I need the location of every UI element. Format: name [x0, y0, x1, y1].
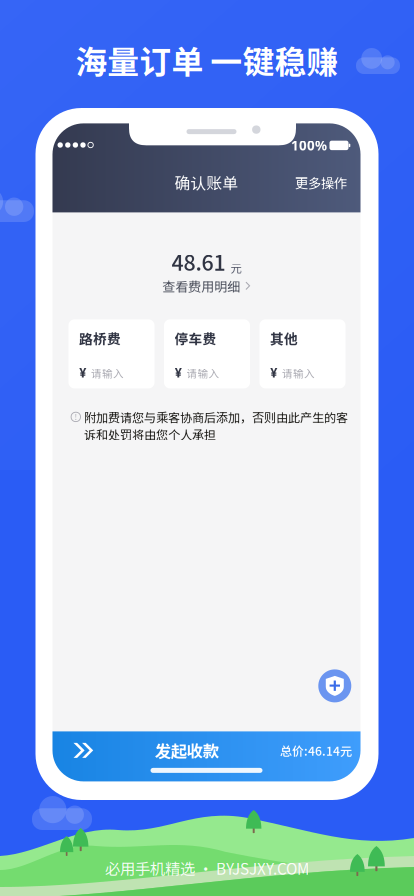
button[interactable]: 停车费 — [164, 319, 250, 388]
staticText: 请输入 — [282, 365, 315, 381]
staticText: ¥ — [270, 363, 278, 381]
button[interactable]: 查看费用明细 — [162, 272, 251, 299]
staticText: 查看费用明细 — [162, 276, 240, 295]
staticText: 元 — [230, 259, 241, 276]
staticText: 路桥费 — [79, 329, 121, 348]
staticText: 海量订单 一键稳赚 — [75, 37, 338, 83]
staticText: ! — [75, 412, 77, 422]
button[interactable]: 其他 — [259, 319, 345, 388]
staticText: 其他 — [270, 329, 298, 348]
button[interactable]: 路桥费 — [68, 319, 154, 388]
staticText: ¥ — [174, 363, 182, 381]
staticText: 总价:46.14元 — [280, 742, 352, 759]
button[interactable]: 发起收款 — [52, 732, 360, 768]
staticText: 附加费请您与乘客协商后添加，否则由此产生的客诉和处罚将由您个人承担 — [84, 408, 348, 443]
button[interactable]: 更多操作 — [283, 168, 360, 197]
staticText: 确认账单 — [174, 171, 238, 194]
staticText: 请输入 — [186, 365, 219, 381]
button[interactable]: Add extra fee — [318, 669, 351, 702]
staticText: 发起收款 — [155, 738, 219, 762]
staticText: 100% — [291, 136, 327, 154]
staticText: 48.61 — [171, 246, 225, 277]
staticText: 更多操作 — [295, 173, 347, 192]
staticText: ¥ — [79, 363, 87, 381]
staticText: 停车费 — [174, 329, 216, 348]
staticText: 必用手机精选 · BYJSJXY.COM — [105, 857, 309, 879]
staticText: 请输入 — [91, 365, 124, 381]
